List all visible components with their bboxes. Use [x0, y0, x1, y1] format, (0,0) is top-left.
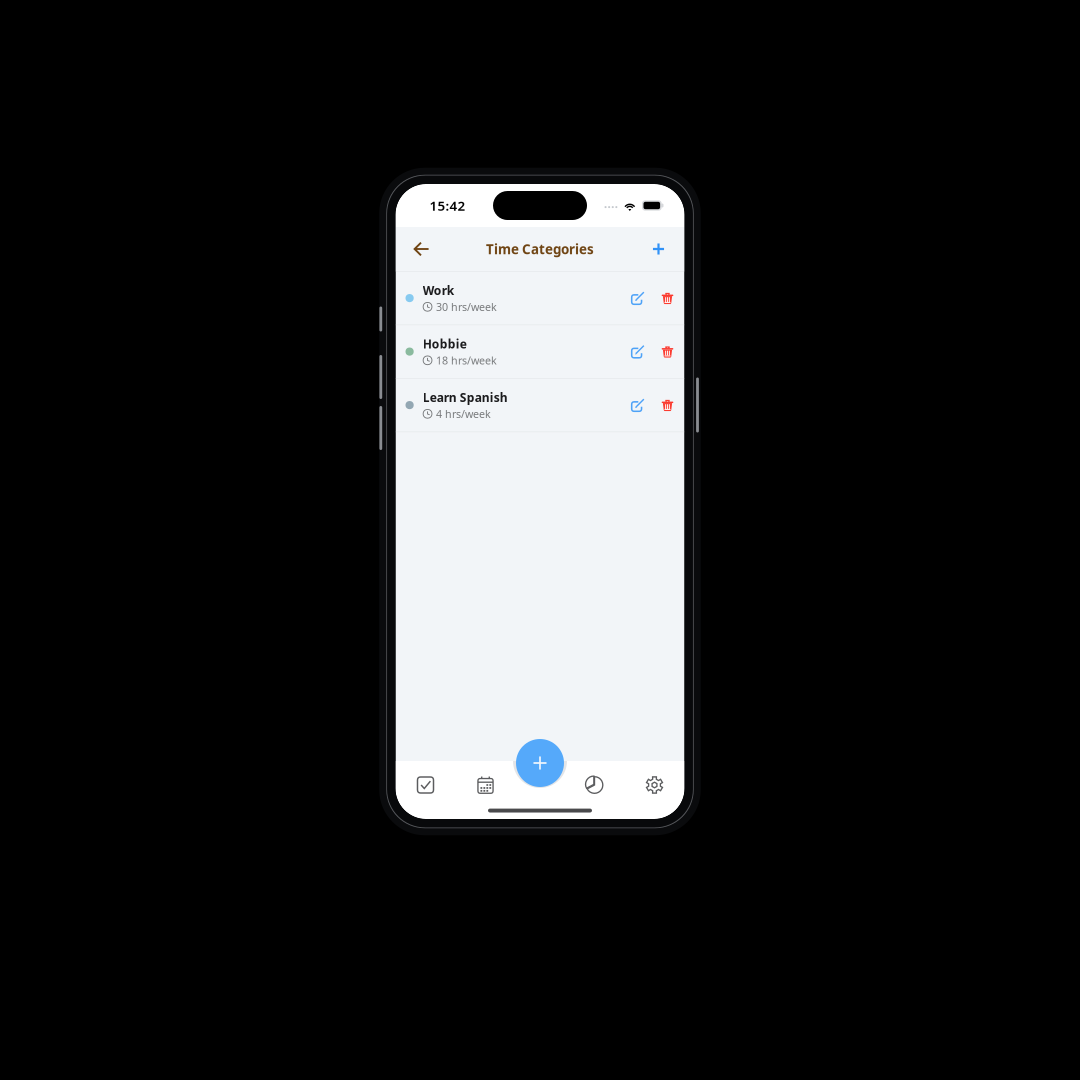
- button[interactable]: Delete Work: [652, 279, 682, 317]
- staticText: 4 hrs/week: [436, 407, 491, 421]
- staticText: Learn Spanish: [423, 389, 508, 405]
- button[interactable]: Delete Learn Spanish: [652, 386, 682, 424]
- staticText: Work: [423, 282, 454, 298]
- button[interactable]: Back: [404, 232, 438, 266]
- button[interactable]: Edit Learn Spanish: [622, 386, 652, 424]
- button[interactable]: Add category: [641, 232, 675, 266]
- staticText: 18 hrs/week: [436, 353, 497, 367]
- button[interactable]: Statistics: [564, 770, 624, 800]
- button[interactable]: Tasks: [395, 770, 455, 800]
- button[interactable]: Edit Hobbie: [622, 333, 652, 371]
- staticText: 30 hrs/week: [436, 300, 497, 314]
- button[interactable]: Calendar: [455, 770, 515, 800]
- staticText: Hobbie: [423, 336, 467, 352]
- staticText: Time Categories: [486, 240, 594, 258]
- button[interactable]: Settings: [624, 770, 684, 800]
- button[interactable]: Delete Hobbie: [652, 333, 682, 371]
- button[interactable]: Add: [515, 738, 565, 788]
- staticText: 15:42: [429, 197, 465, 214]
- button[interactable]: Edit Work: [622, 279, 652, 317]
